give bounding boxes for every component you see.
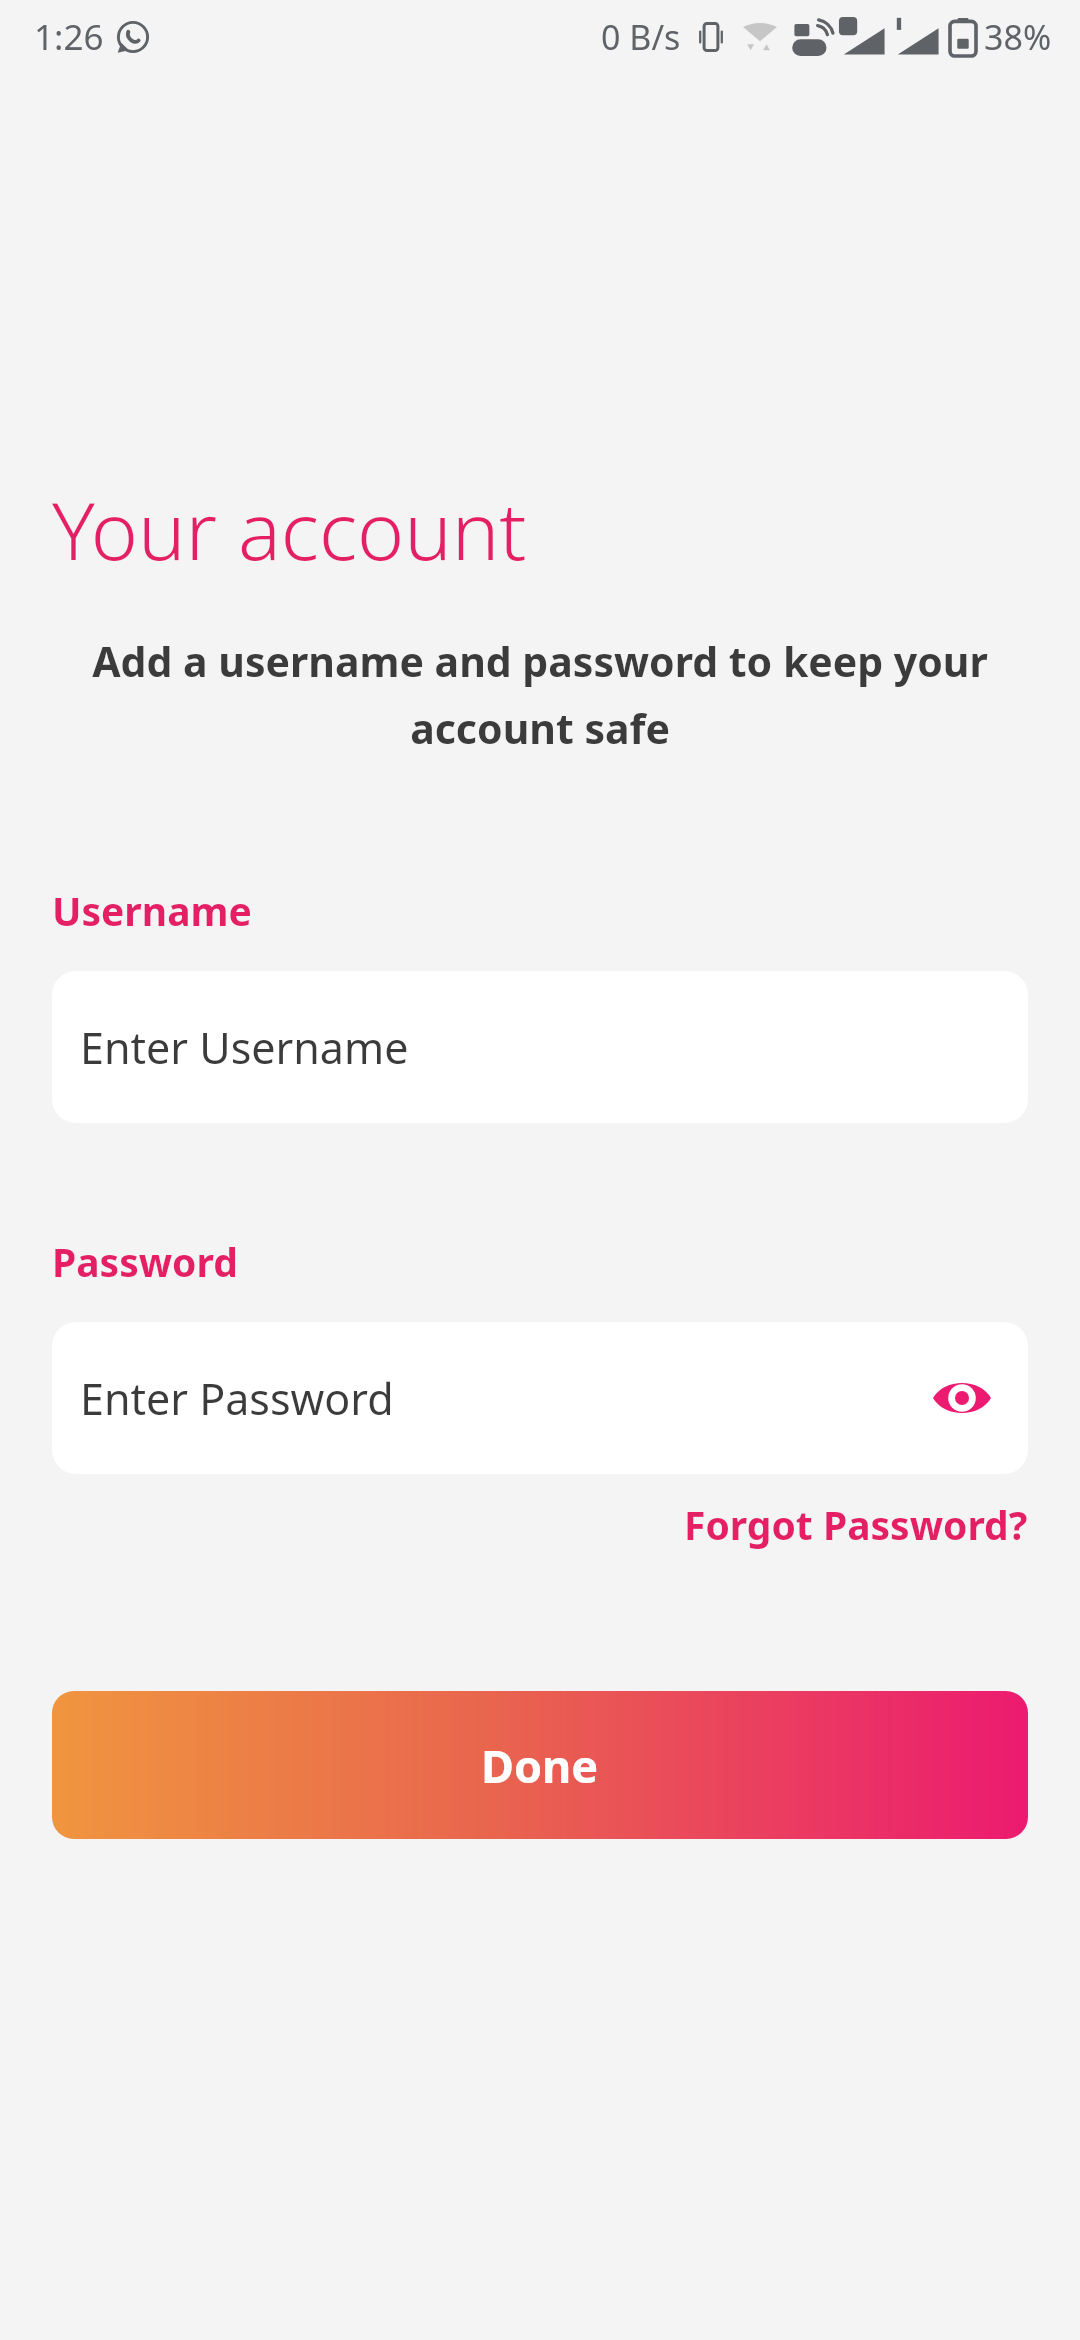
- staticText: 1:26: [34, 13, 104, 61]
- staticText: Enter Username: [80, 1018, 409, 1077]
- staticText: Password: [52, 1235, 238, 1288]
- staticText: 0 B/s: [601, 14, 681, 60]
- staticText: 38%: [984, 14, 1052, 60]
- staticText: Forgot Password?: [684, 1498, 1028, 1551]
- staticText: Your account: [52, 474, 527, 583]
- button[interactable]: Enter Password: [52, 1322, 1028, 1474]
- button[interactable]: Show password: [922, 1358, 1002, 1438]
- staticText: Enter Password: [80, 1369, 394, 1428]
- button[interactable]: Forgot Password?: [684, 1492, 1080, 1557]
- button[interactable]: Done: [52, 1691, 1028, 1839]
- staticText: Add a username and password to keep your…: [80, 633, 1000, 756]
- staticText: Done: [481, 1735, 599, 1796]
- staticText: Username: [52, 884, 252, 937]
- button[interactable]: Enter Username: [52, 971, 1028, 1123]
